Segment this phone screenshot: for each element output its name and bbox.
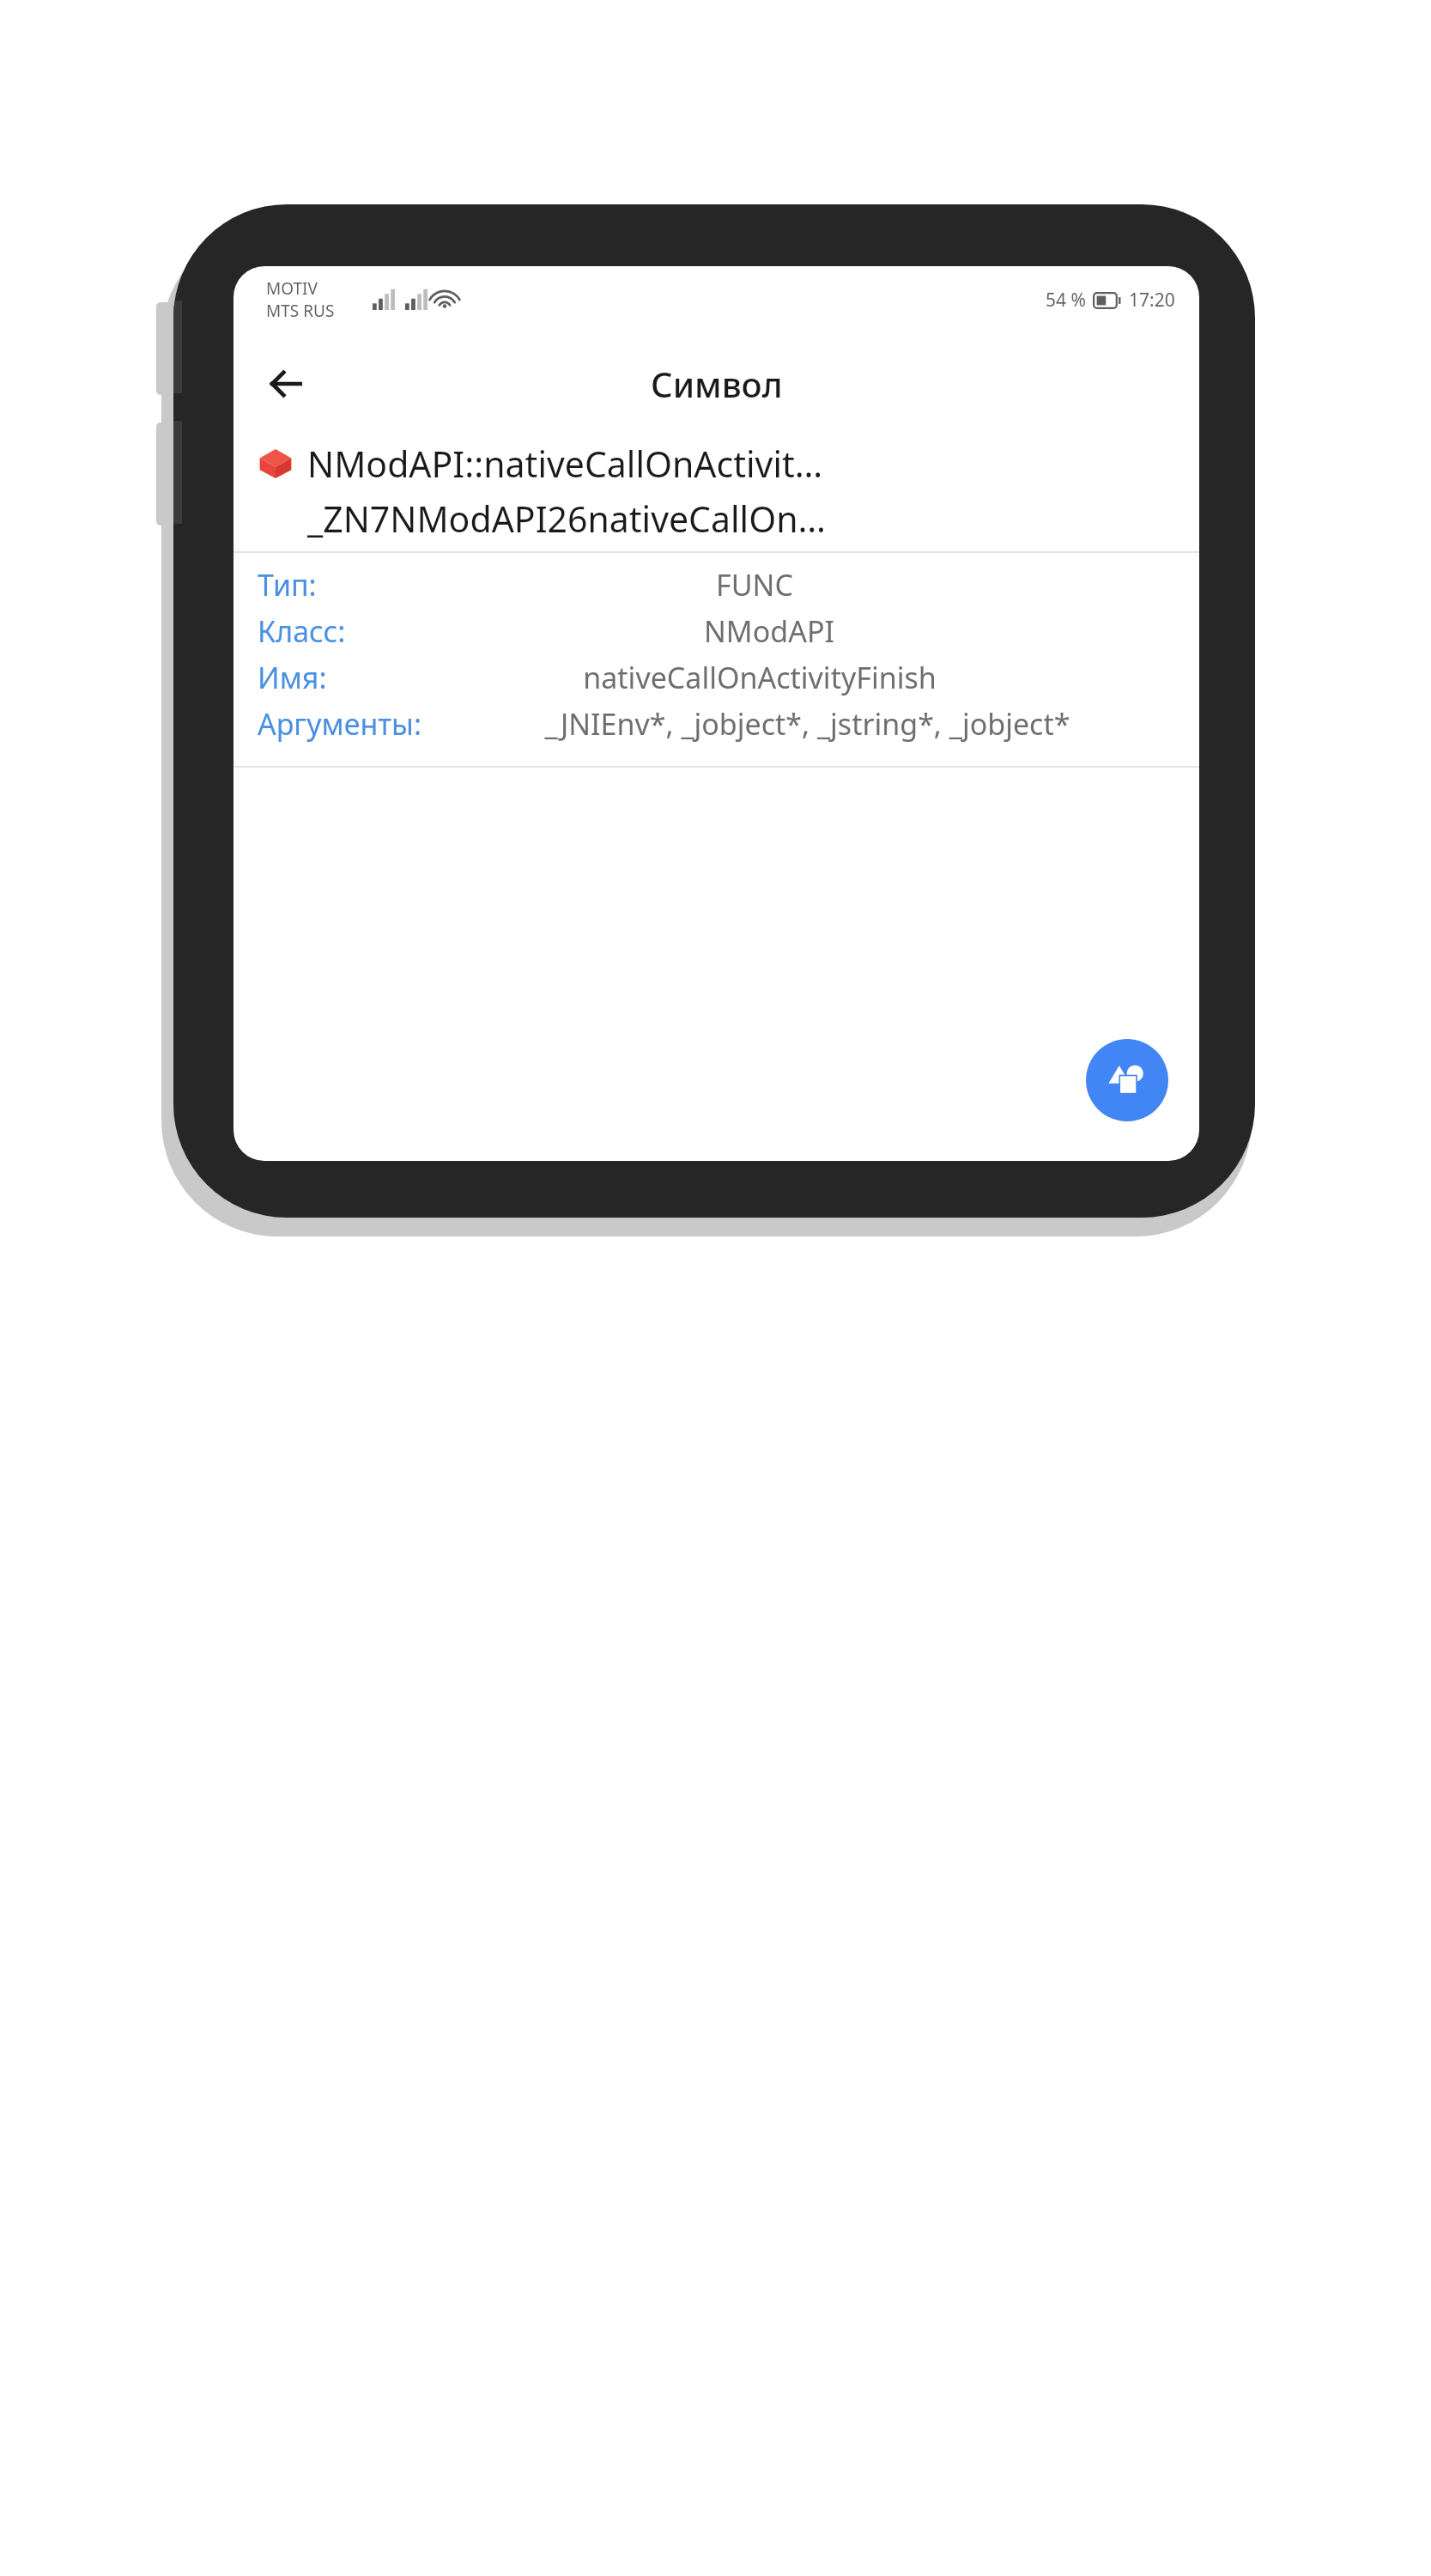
staticText: FUNC — [327, 565, 1182, 605]
staticText: _JNIEnv*, _jobject*, _jstring*, _jobject… — [433, 704, 1182, 744]
staticText: Класс: — [258, 611, 346, 651]
staticText: Имя: — [258, 658, 327, 697]
staticText: Аргументы: — [258, 704, 422, 744]
staticText: NModAPI::nativeCallOnActivit… — [307, 440, 823, 488]
staticText: 54 % — [1046, 288, 1086, 313]
staticText: nativeCallOnActivityFinish — [337, 658, 1182, 697]
staticText: Тип: — [258, 565, 317, 605]
staticText: _ZN7NModAPI26nativeCallOn… — [307, 495, 826, 543]
button[interactable]: Back — [252, 350, 319, 417]
staticText: MTS RUS — [266, 300, 335, 322]
button[interactable]: NModAPI::nativeCallOnActivit… — [233, 434, 1199, 551]
button[interactable]: Тип: — [233, 553, 1199, 766]
staticText: NModAPI — [356, 611, 1182, 651]
staticText: Символ — [651, 361, 783, 407]
button[interactable]: Shapes — [1086, 1039, 1168, 1121]
staticText: MOTIV — [266, 277, 318, 300]
staticText: 17:20 — [1129, 288, 1175, 313]
